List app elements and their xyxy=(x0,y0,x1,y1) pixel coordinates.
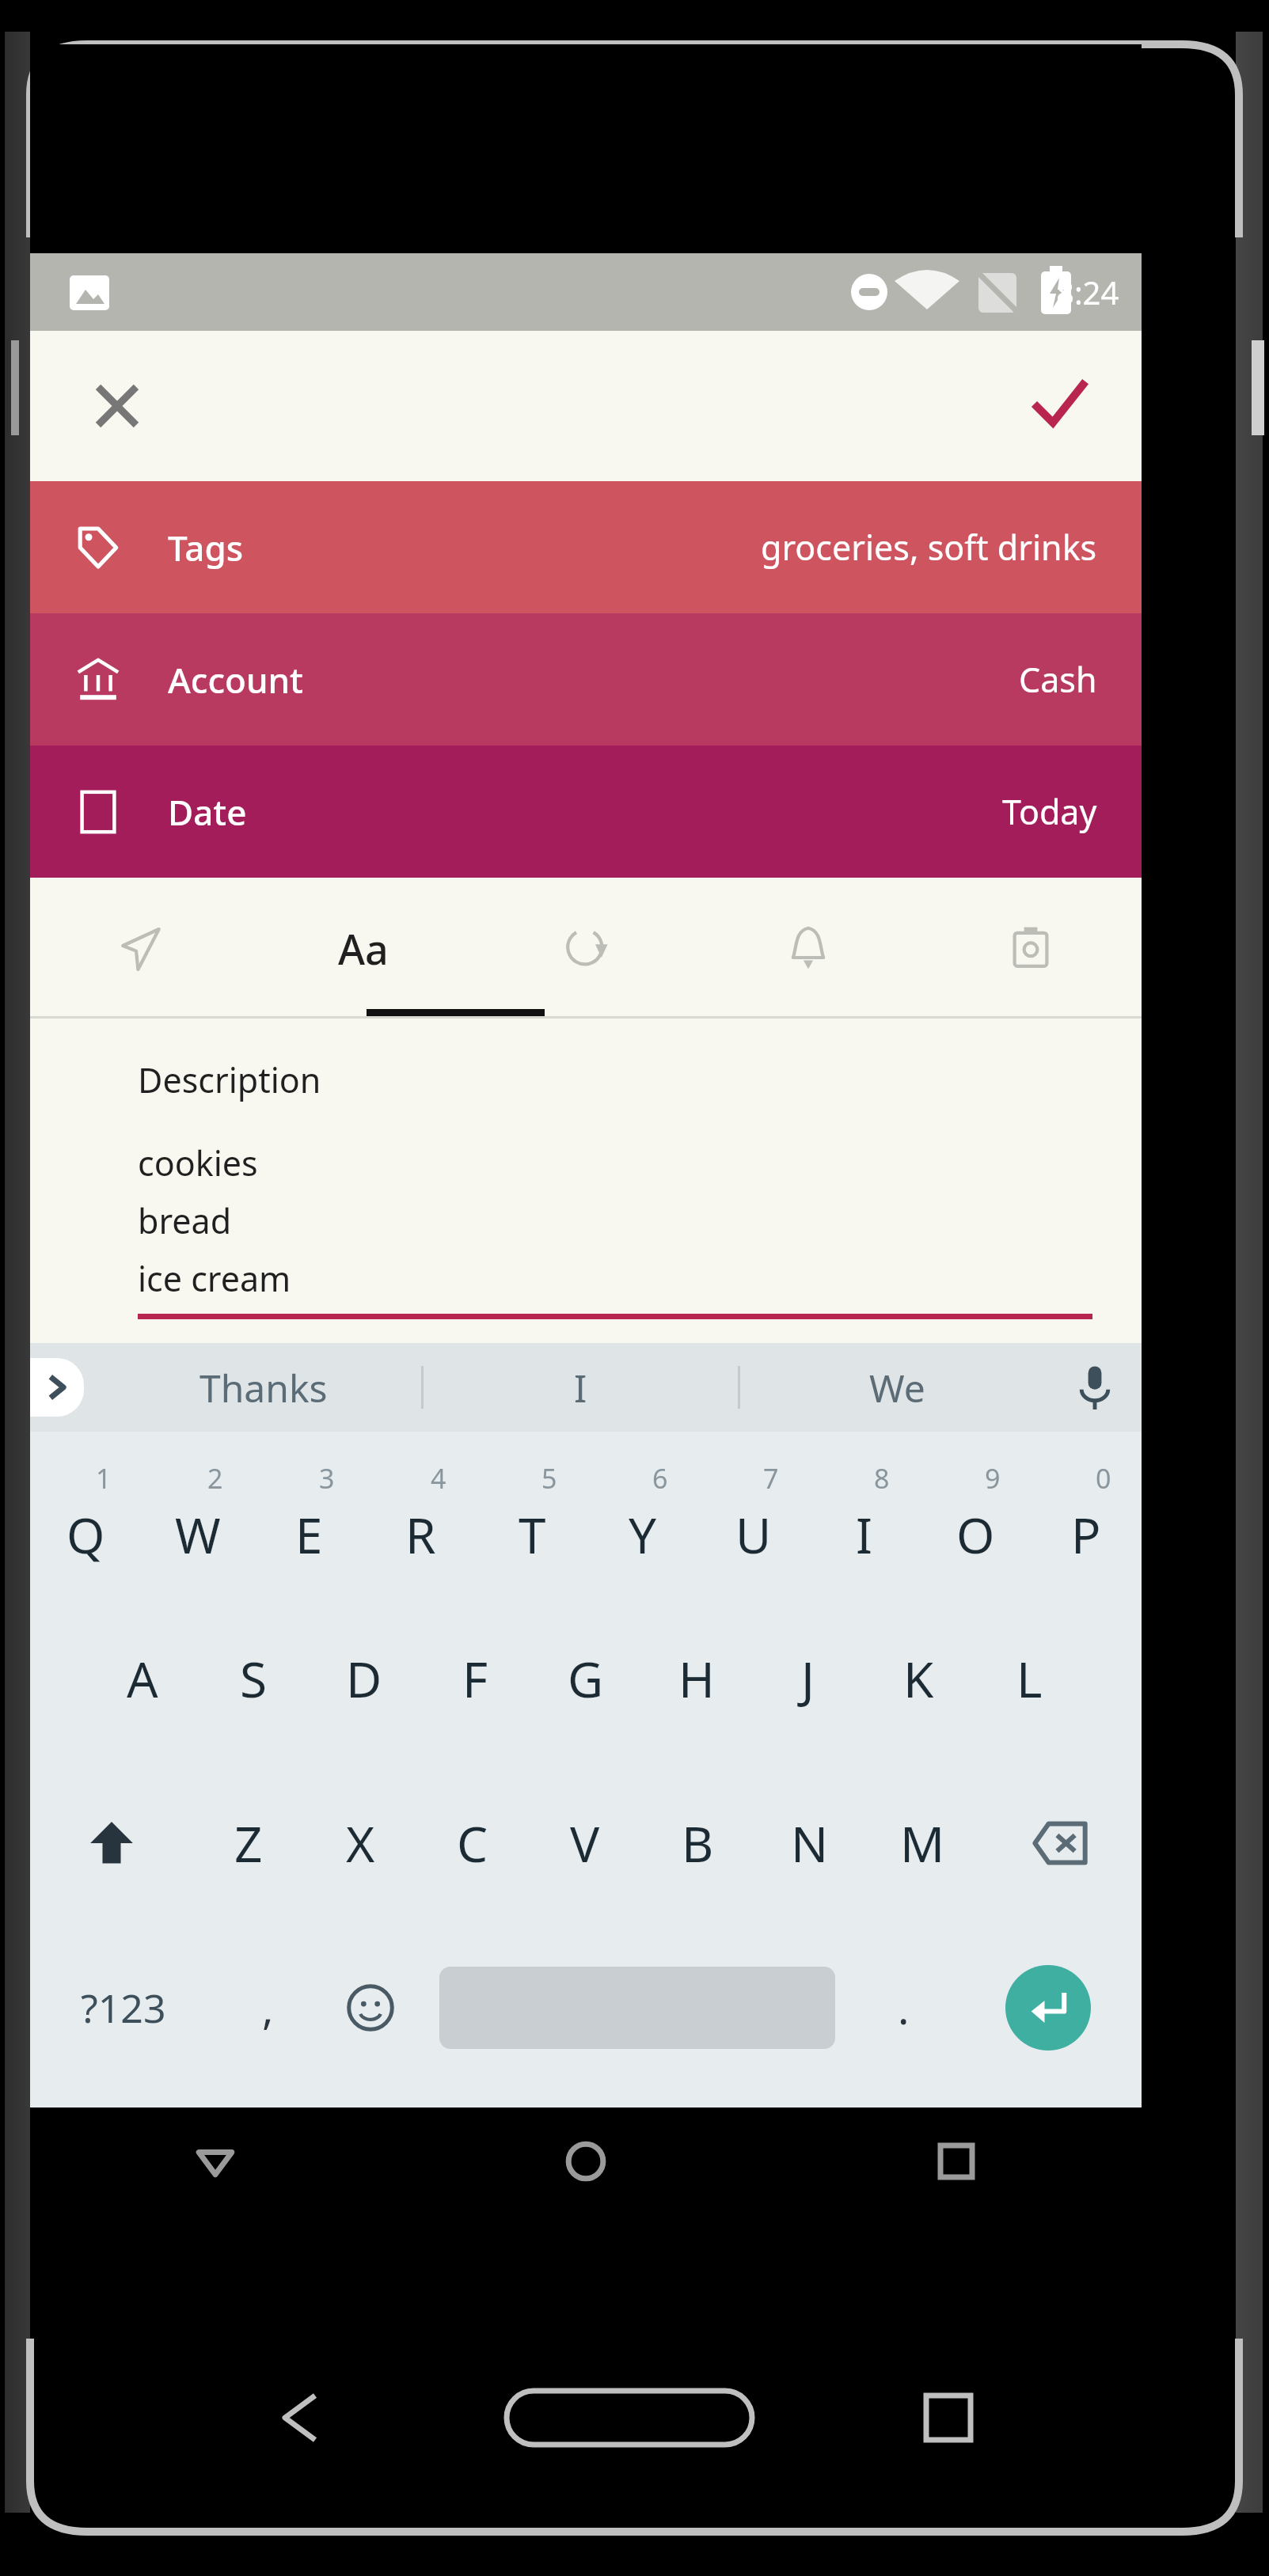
staticText: 2 xyxy=(207,1460,223,1497)
button[interactable]: , xyxy=(216,1925,319,2090)
staticText: P xyxy=(1071,1501,1101,1568)
staticText: Aa xyxy=(338,920,389,977)
button[interactable]: 3 xyxy=(253,1432,365,1596)
button[interactable]: Close xyxy=(85,374,149,438)
button[interactable]: Voice input xyxy=(1067,1360,1123,1415)
button[interactable]: S xyxy=(198,1596,309,1761)
staticText: 9 xyxy=(985,1460,1001,1497)
staticText: R xyxy=(405,1501,436,1568)
staticText: Y xyxy=(629,1501,657,1568)
button[interactable]: L xyxy=(974,1596,1085,1761)
staticText: S xyxy=(240,1645,268,1712)
button[interactable]: ?123 xyxy=(30,1925,216,2090)
button[interactable]: I xyxy=(424,1343,738,1432)
staticText: U xyxy=(735,1501,772,1568)
button[interactable]: Z xyxy=(192,1761,304,1925)
staticText: Date xyxy=(168,788,247,836)
button[interactable]: Location xyxy=(30,878,252,1019)
button[interactable]: Photo xyxy=(919,878,1142,1019)
button[interactable]: Enter xyxy=(955,1925,1142,2090)
button[interactable]: N xyxy=(754,1761,866,1925)
staticText: X xyxy=(346,1810,375,1876)
staticText: V xyxy=(570,1810,600,1876)
staticText: W xyxy=(175,1501,221,1568)
staticText: 8 xyxy=(874,1460,890,1497)
button[interactable]: Backspace xyxy=(978,1761,1142,1925)
staticText: I xyxy=(856,1501,873,1568)
button[interactable]: B xyxy=(641,1761,754,1925)
staticText: Account xyxy=(168,656,303,704)
button[interactable]: Thanks xyxy=(106,1343,421,1432)
button[interactable]: Space xyxy=(422,1925,852,2090)
button[interactable]: Account xyxy=(30,613,1142,745)
button[interactable]: Home xyxy=(401,2107,771,2215)
staticText: 6 xyxy=(652,1460,668,1497)
button[interactable]: J xyxy=(752,1596,863,1761)
staticText: Tags xyxy=(168,524,244,571)
button[interactable]: Date xyxy=(30,745,1142,878)
staticText: A xyxy=(127,1645,158,1712)
staticText: K xyxy=(903,1645,934,1712)
button[interactable]: Shift xyxy=(30,1761,192,1925)
staticText: L xyxy=(1016,1645,1043,1712)
staticText: N xyxy=(791,1810,829,1876)
button[interactable]: V xyxy=(529,1761,641,1925)
staticText: 8:24 xyxy=(1056,271,1119,313)
staticText: C xyxy=(457,1810,488,1876)
button[interactable]: 4 xyxy=(365,1432,477,1596)
button[interactable]: 6 xyxy=(587,1432,698,1596)
button[interactable]: D xyxy=(309,1596,420,1761)
button[interactable]: 5 xyxy=(477,1432,587,1596)
button[interactable]: Save xyxy=(1026,372,1094,440)
button[interactable]: 7 xyxy=(698,1432,809,1596)
button[interactable]: X xyxy=(304,1761,416,1925)
staticText: Thanks xyxy=(199,1362,328,1413)
staticText: Cash xyxy=(1019,656,1097,703)
button[interactable]: A xyxy=(87,1596,198,1761)
staticText: H xyxy=(678,1645,715,1712)
staticText: Q xyxy=(66,1501,105,1568)
button[interactable]: 2 xyxy=(142,1432,253,1596)
button[interactable]: Back xyxy=(30,2107,401,2215)
staticText: Z xyxy=(234,1810,263,1876)
staticText: ?123 xyxy=(81,1981,166,2035)
button[interactable]: Repeat xyxy=(474,878,697,1019)
staticText: G xyxy=(568,1645,604,1712)
button[interactable]: We xyxy=(740,1343,1054,1432)
staticText: J xyxy=(801,1645,815,1712)
staticText: F xyxy=(462,1645,488,1712)
button[interactable]: Reminder xyxy=(697,878,919,1019)
staticText: 7 xyxy=(763,1460,779,1497)
staticText: bread xyxy=(138,1197,232,1244)
staticText: We xyxy=(869,1362,925,1413)
button[interactable]: C xyxy=(416,1761,529,1925)
button[interactable]: . xyxy=(852,1925,955,2090)
staticText: 1 xyxy=(96,1460,112,1497)
staticText: cookies xyxy=(138,1140,258,1186)
button[interactable]: M xyxy=(866,1761,978,1925)
button[interactable]: Recents xyxy=(771,2107,1142,2215)
staticText: ice cream xyxy=(138,1255,291,1302)
button[interactable]: F xyxy=(420,1596,530,1761)
staticText: B xyxy=(682,1810,714,1876)
button[interactable]: Emoji xyxy=(319,1925,422,2090)
button[interactable]: K xyxy=(863,1596,974,1761)
staticText: O xyxy=(956,1501,995,1568)
staticText: , xyxy=(262,1978,274,2037)
button[interactable]: More suggestions xyxy=(30,1358,84,1417)
staticText: Today xyxy=(1002,788,1097,835)
staticText: D xyxy=(346,1645,382,1712)
staticText: . xyxy=(898,1978,910,2037)
button[interactable]: H xyxy=(641,1596,752,1761)
button[interactable]: Aa xyxy=(252,878,474,1019)
button[interactable]: 9 xyxy=(920,1432,1031,1596)
staticText: E xyxy=(295,1501,323,1568)
button[interactable]: Tags xyxy=(30,481,1142,613)
button[interactable]: 8 xyxy=(809,1432,920,1596)
button[interactable]: G xyxy=(530,1596,641,1761)
button[interactable]: 1 xyxy=(30,1432,142,1596)
button[interactable]: 0 xyxy=(1031,1432,1142,1596)
staticText: I xyxy=(574,1362,587,1413)
staticText: groceries, soft drinks xyxy=(761,524,1097,571)
